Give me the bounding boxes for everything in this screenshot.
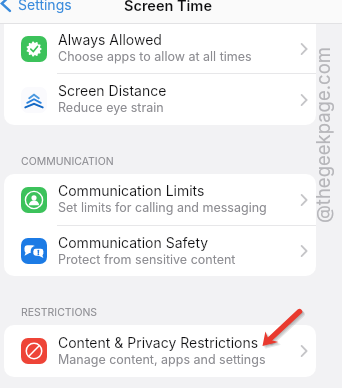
button[interactable]: Communication Limits bbox=[4, 174, 316, 225]
staticText: Always Allowed bbox=[58, 31, 162, 48]
other: Annotation arrow bbox=[0, 0, 342, 388]
staticText: Settings bbox=[18, 0, 72, 13]
staticText: Screen Distance bbox=[58, 82, 167, 99]
staticText: Manage content, apps and settings bbox=[58, 352, 266, 367]
staticText: Content & Privacy Restrictions bbox=[58, 334, 259, 351]
button[interactable]: Always Allowed bbox=[4, 24, 316, 73]
staticText: Communication Safety bbox=[58, 234, 209, 251]
staticText: Reduce eye strain bbox=[58, 100, 164, 115]
staticText: COMMUNICATION bbox=[21, 155, 114, 168]
button[interactable]: Back to Settings bbox=[0, 0, 78, 12]
staticText: Protect from sensitive content bbox=[58, 252, 236, 267]
staticText: Screen Time bbox=[124, 0, 212, 15]
staticText: RESTRICTIONS bbox=[21, 306, 98, 319]
staticText: Choose apps to allow at all times bbox=[58, 49, 252, 64]
staticText: Communication Limits bbox=[58, 182, 205, 199]
button[interactable]: Communication Safety bbox=[4, 226, 316, 276]
button[interactable]: Content & Privacy Restrictions bbox=[4, 325, 316, 377]
button[interactable]: Screen Distance bbox=[4, 74, 316, 125]
staticText: Set limits for calling and messaging bbox=[58, 200, 267, 215]
